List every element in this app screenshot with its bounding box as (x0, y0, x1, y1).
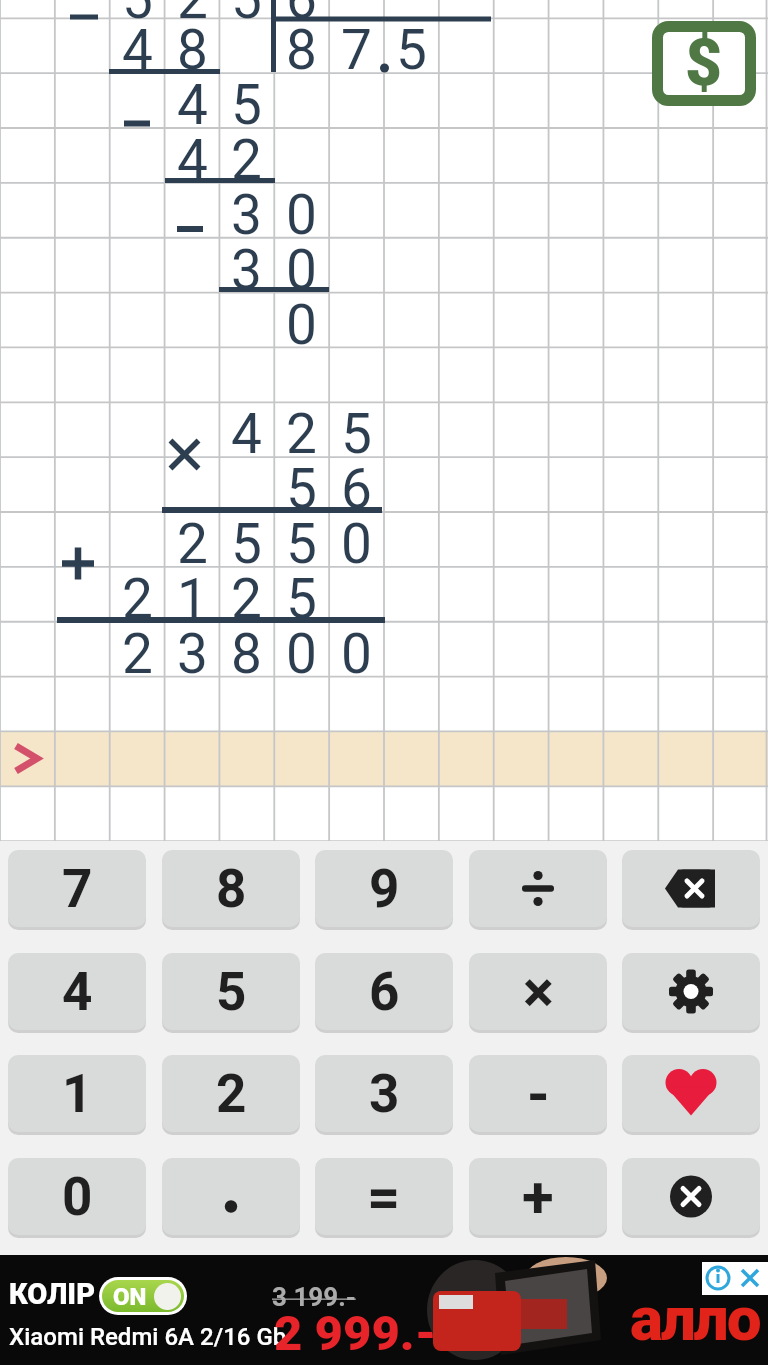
staticText: алло (630, 1282, 760, 1355)
staticText: × (523, 958, 554, 1026)
button[interactable] (702, 1262, 768, 1295)
staticText: 0 (286, 183, 317, 238)
staticText: Xiaomi Redmi 6A 2/16 Gb (9, 1323, 287, 1351)
staticText: 0 (286, 622, 317, 677)
button[interactable] (469, 850, 607, 927)
button[interactable]: 1 (8, 1055, 146, 1132)
button[interactable]: 7 (8, 850, 146, 927)
staticText: 5 (286, 567, 317, 622)
staticText: 0 (341, 512, 372, 567)
staticText: 8 (286, 18, 317, 73)
button[interactable]: - (469, 1055, 607, 1132)
staticText: = (367, 1163, 401, 1231)
staticText: 7 (341, 18, 372, 73)
staticText: 0 (286, 293, 317, 348)
button[interactable]: $ (652, 21, 756, 106)
button[interactable] (622, 850, 760, 927)
button[interactable]: 5 (162, 953, 300, 1030)
button[interactable] (162, 1158, 300, 1235)
staticText: 5 (216, 961, 247, 1023)
button[interactable]: 2 (162, 1055, 300, 1132)
staticText: - (527, 1060, 550, 1128)
staticText: 0 (341, 622, 372, 677)
staticText: 8 (231, 622, 262, 677)
staticText: 1 (62, 1063, 93, 1125)
button[interactable] (622, 1158, 760, 1235)
staticText: 3 (231, 238, 262, 293)
button[interactable]: 8 (162, 850, 300, 927)
staticText: 2 (286, 402, 317, 457)
button[interactable]: 9 (315, 850, 453, 927)
staticText: 5 (231, 0, 262, 22)
staticText: 2 (216, 1063, 247, 1125)
staticText: 5 (396, 18, 427, 73)
staticText: 8 (216, 858, 247, 920)
staticText: 4 (177, 128, 208, 183)
button[interactable]: + (469, 1158, 607, 1235)
staticText: 6 (369, 961, 400, 1023)
staticText: 8 (177, 18, 208, 73)
staticText: 6 (286, 0, 317, 22)
staticText: 1 (177, 567, 208, 622)
button[interactable]: 4 (8, 953, 146, 1030)
staticText: 2 (231, 128, 262, 183)
staticText: 9 (369, 858, 400, 920)
staticText: $ (685, 26, 723, 101)
button[interactable] (622, 953, 760, 1030)
staticText: 3 199.- (272, 1282, 356, 1312)
staticText: 4 (122, 18, 153, 73)
staticText: 7 (62, 858, 93, 920)
staticText: ON (113, 1283, 147, 1311)
staticText: 0 (62, 1166, 93, 1228)
staticText: 5 (231, 512, 262, 567)
staticText: 0 (286, 238, 317, 293)
button[interactable]: × (469, 953, 607, 1030)
staticText: + (522, 1163, 554, 1231)
staticText: 2 999.- (274, 1305, 437, 1362)
staticText: 3 (177, 622, 208, 677)
staticText: 5 (286, 512, 317, 567)
staticText: 2 (122, 567, 153, 622)
staticText: 4 (62, 961, 93, 1023)
staticText: 5 (231, 73, 262, 128)
button[interactable]: 3 (315, 1055, 453, 1132)
button[interactable]: = (315, 1158, 453, 1235)
staticText: 3 (369, 1063, 400, 1125)
staticText: 6 (341, 457, 372, 512)
staticText: 2 (177, 512, 208, 567)
button[interactable] (622, 1055, 760, 1132)
staticText: 2 (231, 567, 262, 622)
staticText: 5 (286, 457, 317, 512)
staticText: 2 (122, 622, 153, 677)
staticText: 4 (231, 402, 262, 457)
button[interactable]: 0 (8, 1158, 146, 1235)
staticText: КОЛІР (9, 1277, 96, 1311)
staticText: 5 (122, 0, 153, 22)
button[interactable]: КОЛІР (0, 1255, 768, 1365)
staticText: 4 (177, 73, 208, 128)
button[interactable]: 6 (315, 953, 453, 1030)
staticText: 2 (177, 0, 208, 22)
staticText: 3 (231, 183, 262, 238)
staticText: 5 (341, 402, 372, 457)
